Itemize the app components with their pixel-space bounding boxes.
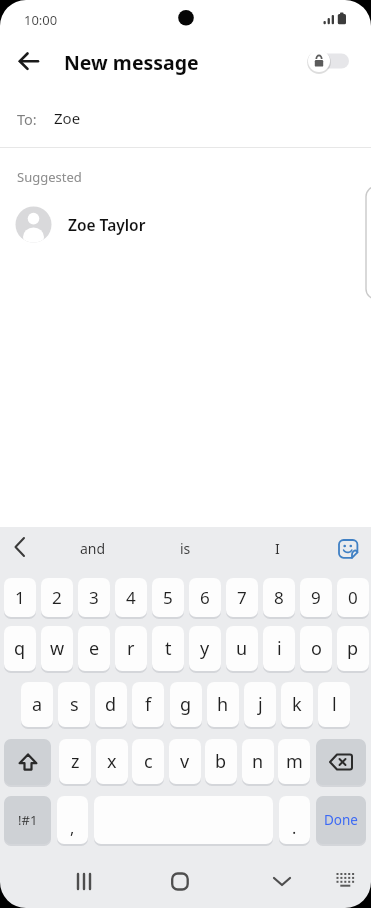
button[interactable]: I [240, 533, 315, 563]
button[interactable]: 0 [337, 578, 369, 617]
staticText: !#1 [18, 811, 38, 829]
button[interactable] [330, 866, 362, 898]
button[interactable]: u [226, 626, 258, 671]
staticText: f [145, 692, 152, 717]
staticText: r [127, 636, 135, 661]
staticText: i [277, 636, 282, 661]
staticText: x [107, 749, 117, 774]
button[interactable]: 3 [78, 578, 110, 617]
staticText: k [292, 692, 302, 717]
button[interactable] [316, 739, 366, 785]
button[interactable]: s [58, 682, 90, 727]
button[interactable] [60, 858, 110, 903]
staticText: To: [17, 109, 37, 129]
button[interactable]: w [41, 626, 73, 671]
staticText: 6 [200, 586, 210, 609]
button[interactable] [8, 44, 52, 80]
staticText: I [275, 539, 280, 558]
button[interactable] [155, 858, 205, 903]
staticText: 3 [89, 586, 99, 609]
staticText: u [236, 636, 248, 661]
staticText: 9 [311, 586, 321, 609]
staticText: q [14, 636, 26, 661]
button[interactable] [305, 46, 357, 76]
staticText: Suggested [17, 168, 82, 186]
button[interactable]: 1 [4, 578, 36, 617]
button[interactable]: 5 [152, 578, 184, 617]
staticText: o [311, 636, 322, 661]
button[interactable]: j [244, 682, 276, 727]
button[interactable]: 8 [263, 578, 295, 617]
staticText: h [217, 692, 229, 717]
staticText: e [89, 636, 100, 661]
button[interactable]: z [59, 739, 91, 784]
button[interactable]: i [263, 626, 295, 671]
button[interactable]: n [242, 739, 274, 784]
button[interactable]: b [205, 739, 237, 784]
staticText: New message [64, 49, 199, 76]
staticText: z [71, 749, 80, 774]
staticText: b [215, 749, 227, 774]
staticText: 7 [237, 586, 247, 609]
button[interactable]: t [152, 626, 184, 671]
button[interactable]: k [281, 682, 313, 727]
button[interactable]: d [95, 682, 127, 727]
button[interactable]: , [57, 796, 88, 844]
button[interactable]: and [55, 533, 130, 563]
button[interactable]: g [170, 682, 202, 727]
staticText: a [32, 692, 43, 717]
staticText: 0 [348, 586, 358, 609]
button[interactable]: 7 [226, 578, 258, 617]
staticText: d [105, 692, 117, 717]
staticText: c [144, 749, 153, 774]
staticText: Done [324, 811, 358, 829]
button[interactable]: is [148, 533, 223, 563]
button[interactable] [4, 739, 51, 785]
staticText: n [252, 749, 264, 774]
button[interactable]: m [278, 739, 310, 784]
staticText: Zoe Taylor [68, 214, 146, 235]
button[interactable]: . [279, 796, 310, 844]
staticText: . [292, 817, 297, 839]
staticText: m [286, 749, 303, 774]
button[interactable] [257, 858, 307, 903]
staticText: 1 [15, 586, 25, 609]
button[interactable]: q [4, 626, 36, 671]
button[interactable]: f [132, 682, 164, 727]
button[interactable]: o [300, 626, 332, 671]
staticText: 2 [52, 586, 62, 609]
button[interactable]: 2 [41, 578, 73, 617]
button[interactable]: l [318, 682, 350, 727]
staticText: v [180, 749, 190, 774]
button[interactable]: To: [0, 100, 371, 140]
staticText: l [332, 692, 337, 717]
button[interactable]: 4 [115, 578, 147, 617]
button[interactable]: e [78, 626, 110, 671]
button[interactable]: v [169, 739, 201, 784]
staticText: j [258, 692, 263, 717]
staticText: is [180, 539, 191, 558]
staticText: 10:00 [24, 11, 58, 29]
button[interactable] [334, 535, 364, 565]
staticText: s [70, 692, 79, 717]
staticText: t [165, 636, 172, 661]
button[interactable]: p [337, 626, 369, 671]
button[interactable]: 6 [189, 578, 221, 617]
button[interactable]: r [115, 626, 147, 671]
button[interactable]: h [207, 682, 239, 727]
button[interactable]: 9 [300, 578, 332, 617]
button[interactable]: !#1 [4, 796, 51, 844]
button[interactable]: Zoe Taylor [0, 201, 360, 248]
staticText: Zoe [54, 108, 81, 128]
staticText: 8 [274, 586, 284, 609]
staticText: , [70, 817, 75, 839]
button[interactable]: a [21, 682, 53, 727]
button[interactable]: Done [316, 796, 366, 844]
staticText: w [50, 636, 65, 661]
button[interactable] [4, 531, 40, 565]
staticText: g [180, 692, 192, 717]
button[interactable]: x [96, 739, 128, 784]
button[interactable]: c [132, 739, 164, 784]
button[interactable]: y [189, 626, 221, 671]
